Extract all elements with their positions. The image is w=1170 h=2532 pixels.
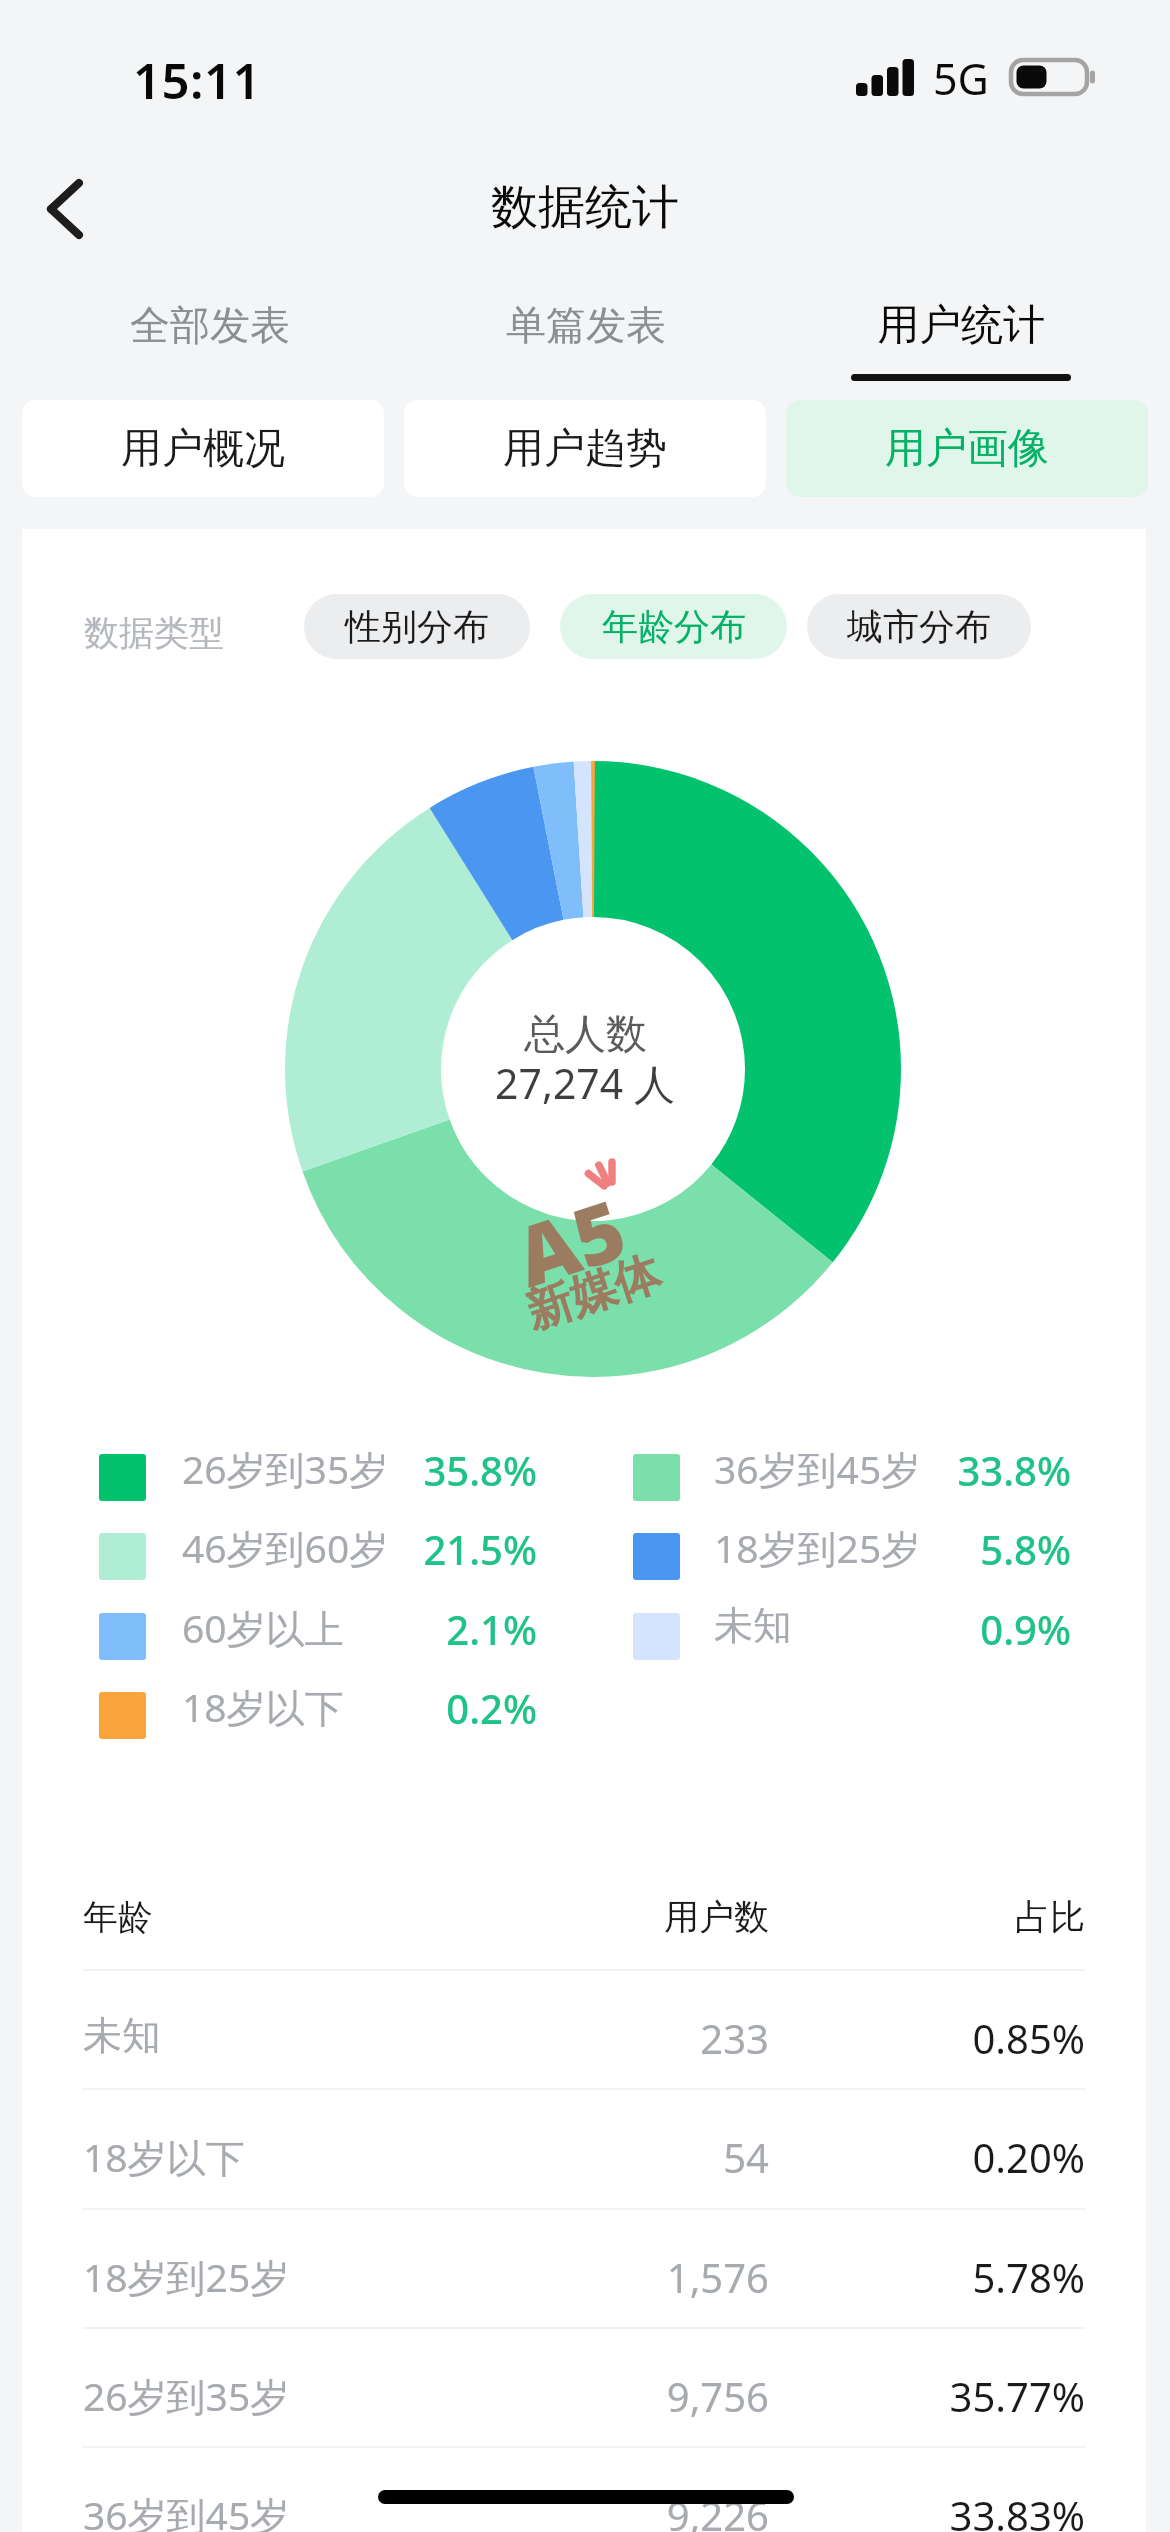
staticText: 35.8% <box>237 1443 537 1497</box>
staticText: 36岁到45岁 <box>714 1442 921 1495</box>
staticText: 46岁到60岁 <box>182 1521 389 1574</box>
staticText: 0.20% <box>785 2130 1085 2184</box>
staticText: 数据统计 <box>491 178 679 237</box>
staticText: 城市分布 <box>847 604 991 649</box>
staticText: 5.78% <box>785 2250 1085 2304</box>
staticText: 33.8% <box>771 1443 1071 1497</box>
staticText: 占比 <box>785 1895 1085 1939</box>
button[interactable]: 年龄分布 <box>560 594 787 659</box>
staticText: 0.85% <box>785 2011 1085 2065</box>
staticText: 9,226 <box>469 2488 769 2532</box>
staticText: 未知 <box>714 1601 792 1650</box>
button[interactable]: 性别分布 <box>304 594 530 659</box>
staticText: 单篇发表 <box>506 300 666 350</box>
staticText: 233 <box>469 2011 769 2065</box>
staticText: 用户数 <box>469 1895 769 1939</box>
button[interactable]: 用户画像 <box>786 400 1148 497</box>
staticText: 年龄分布 <box>602 604 746 649</box>
staticText: 27,274 人 <box>495 1055 675 1111</box>
staticText: 60岁以上 <box>182 1601 344 1654</box>
button[interactable]: 未知 <box>22 1971 1146 2088</box>
staticText: 用户概况 <box>121 423 285 475</box>
staticText: 0.2% <box>237 1681 537 1735</box>
staticText: 15:11 <box>133 47 262 114</box>
staticText: 2.1% <box>237 1602 537 1656</box>
staticText: 35.77% <box>785 2369 1085 2423</box>
staticText: 总人数 <box>524 1009 647 1061</box>
staticText: 未知 <box>83 2011 161 2060</box>
button[interactable]: 城市分布 <box>807 594 1031 659</box>
button[interactable]: 单篇发表 <box>398 268 773 388</box>
staticText: 用户统计 <box>877 299 1045 352</box>
staticText: 21.5% <box>237 1522 537 1576</box>
staticText: 用户趋势 <box>503 423 667 475</box>
staticText: 26岁到35岁 <box>182 1442 389 1495</box>
button[interactable]: 用户趋势 <box>404 400 766 497</box>
staticText: 33.83% <box>785 2488 1085 2532</box>
staticText: 1,576 <box>469 2250 769 2304</box>
staticText: 18岁以下 <box>182 1680 344 1733</box>
staticText: 数据类型 <box>84 611 224 655</box>
staticText: 0.9% <box>771 1602 1071 1656</box>
button[interactable]: 36岁到45岁 <box>22 2448 1146 2532</box>
staticText: 18岁到25岁 <box>83 2250 290 2303</box>
staticText: 全部发表 <box>130 300 290 350</box>
button[interactable]: 用户概况 <box>22 400 384 497</box>
staticText: 18岁到25岁 <box>714 1521 921 1574</box>
staticText: 9,756 <box>469 2369 769 2423</box>
button[interactable]: 26岁到35岁 <box>22 2329 1146 2446</box>
button[interactable]: 18岁以下 <box>22 2090 1146 2207</box>
staticText: 新媒体 <box>518 1244 668 1342</box>
button[interactable]: 18岁到25岁 <box>22 2210 1146 2327</box>
staticText: 年龄 <box>83 1895 153 1939</box>
staticText: 54 <box>469 2130 769 2184</box>
staticText: 用户画像 <box>885 423 1049 475</box>
staticText: 36岁到45岁 <box>83 2488 290 2532</box>
staticText: 5G <box>933 49 989 108</box>
staticText: 5.8% <box>771 1522 1071 1576</box>
button[interactable]: 全部发表 <box>22 268 398 388</box>
staticText: A5 <box>501 1171 639 1311</box>
staticText: 18岁以下 <box>83 2130 245 2183</box>
staticText: 26岁到35岁 <box>83 2369 290 2422</box>
button[interactable]: 用户统计 <box>773 268 1148 388</box>
button[interactable]: Back <box>17 161 113 257</box>
staticText: 性别分布 <box>345 604 489 649</box>
